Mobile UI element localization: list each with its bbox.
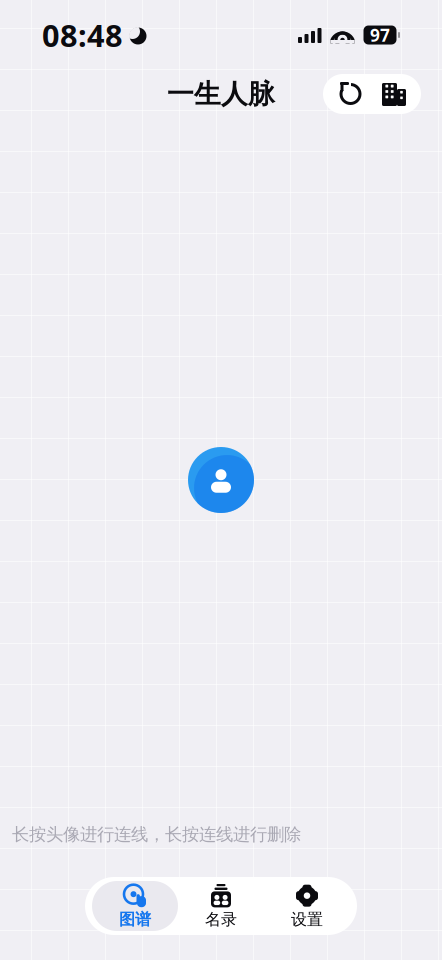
- staticText: 一生人脉: [167, 78, 275, 110]
- button[interactable]: 公司: [380, 80, 407, 107]
- staticText: 名录: [205, 910, 237, 929]
- button[interactable]: 我: [188, 447, 254, 513]
- staticText: 08:48: [42, 15, 123, 55]
- staticText: 97: [370, 23, 390, 46]
- staticText: 长按头像进行连线，长按连线进行删除: [12, 824, 301, 845]
- button[interactable]: 设置: [264, 881, 350, 931]
- button[interactable]: 撤销: [337, 80, 364, 107]
- button[interactable]: 名录: [178, 881, 264, 931]
- staticText: 设置: [291, 910, 323, 929]
- button[interactable]: 图谱: [92, 881, 178, 931]
- staticText: 图谱: [119, 910, 151, 929]
